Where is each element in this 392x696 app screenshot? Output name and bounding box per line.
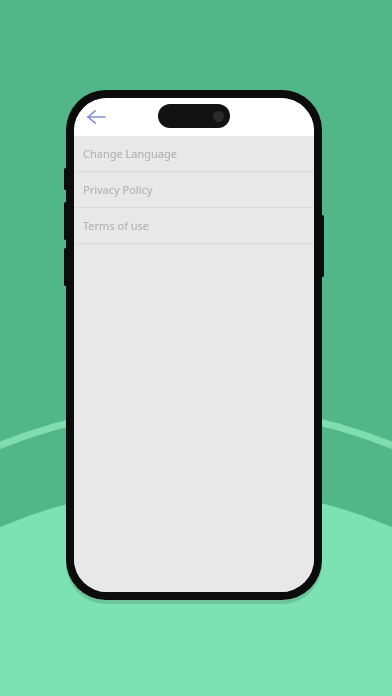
staticText: Privacy Policy xyxy=(83,182,153,197)
button[interactable]: Change Language xyxy=(74,136,314,171)
staticText: Terms of use xyxy=(83,218,150,233)
button[interactable]: Terms of use xyxy=(74,208,314,243)
staticText: Change Language xyxy=(83,146,177,161)
button[interactable]: Privacy Policy xyxy=(74,172,314,207)
button[interactable]: Back xyxy=(80,101,112,133)
